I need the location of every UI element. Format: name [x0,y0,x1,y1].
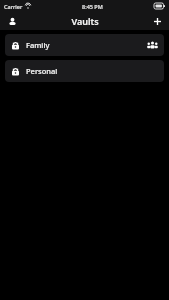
button[interactable]: Family [5,34,164,56]
button[interactable]: Add vault [148,12,166,30]
button[interactable]: Account [3,12,21,30]
staticText: Vaults [71,15,99,27]
staticText: 8:45 PM [82,3,103,10]
staticText: Family [26,40,50,50]
staticText: Carrier [4,3,23,10]
button[interactable]: Personal [5,60,164,82]
staticText: Personal [26,66,58,76]
